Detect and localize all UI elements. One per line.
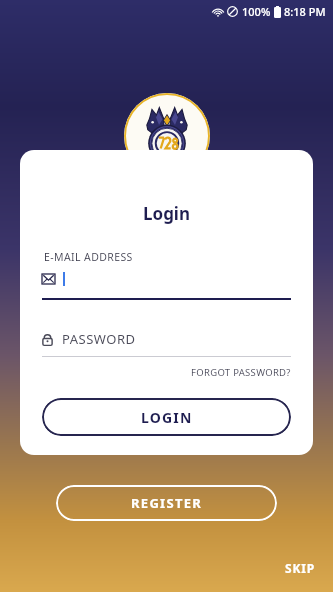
staticText: PASSWORD (62, 330, 136, 348)
staticText: SKIP (285, 560, 315, 576)
staticText: 100% (242, 4, 271, 19)
staticText: FORGOT PASSWORD? (191, 366, 291, 379)
staticText: 8:18 PM (284, 4, 326, 19)
button[interactable]: PASSWORD (42, 330, 291, 356)
button[interactable]: LOGIN (42, 398, 291, 436)
staticText: E-MAIL ADDRESS (44, 250, 133, 264)
button[interactable]: REGISTER (56, 485, 277, 521)
staticText: Login (20, 202, 313, 225)
staticText: LOGIN (141, 408, 193, 427)
button[interactable]: FORGOT PASSWORD? (191, 366, 291, 379)
button[interactable]: SKIP (281, 556, 319, 580)
staticText: REGISTER (131, 494, 203, 512)
button[interactable] (42, 272, 291, 298)
